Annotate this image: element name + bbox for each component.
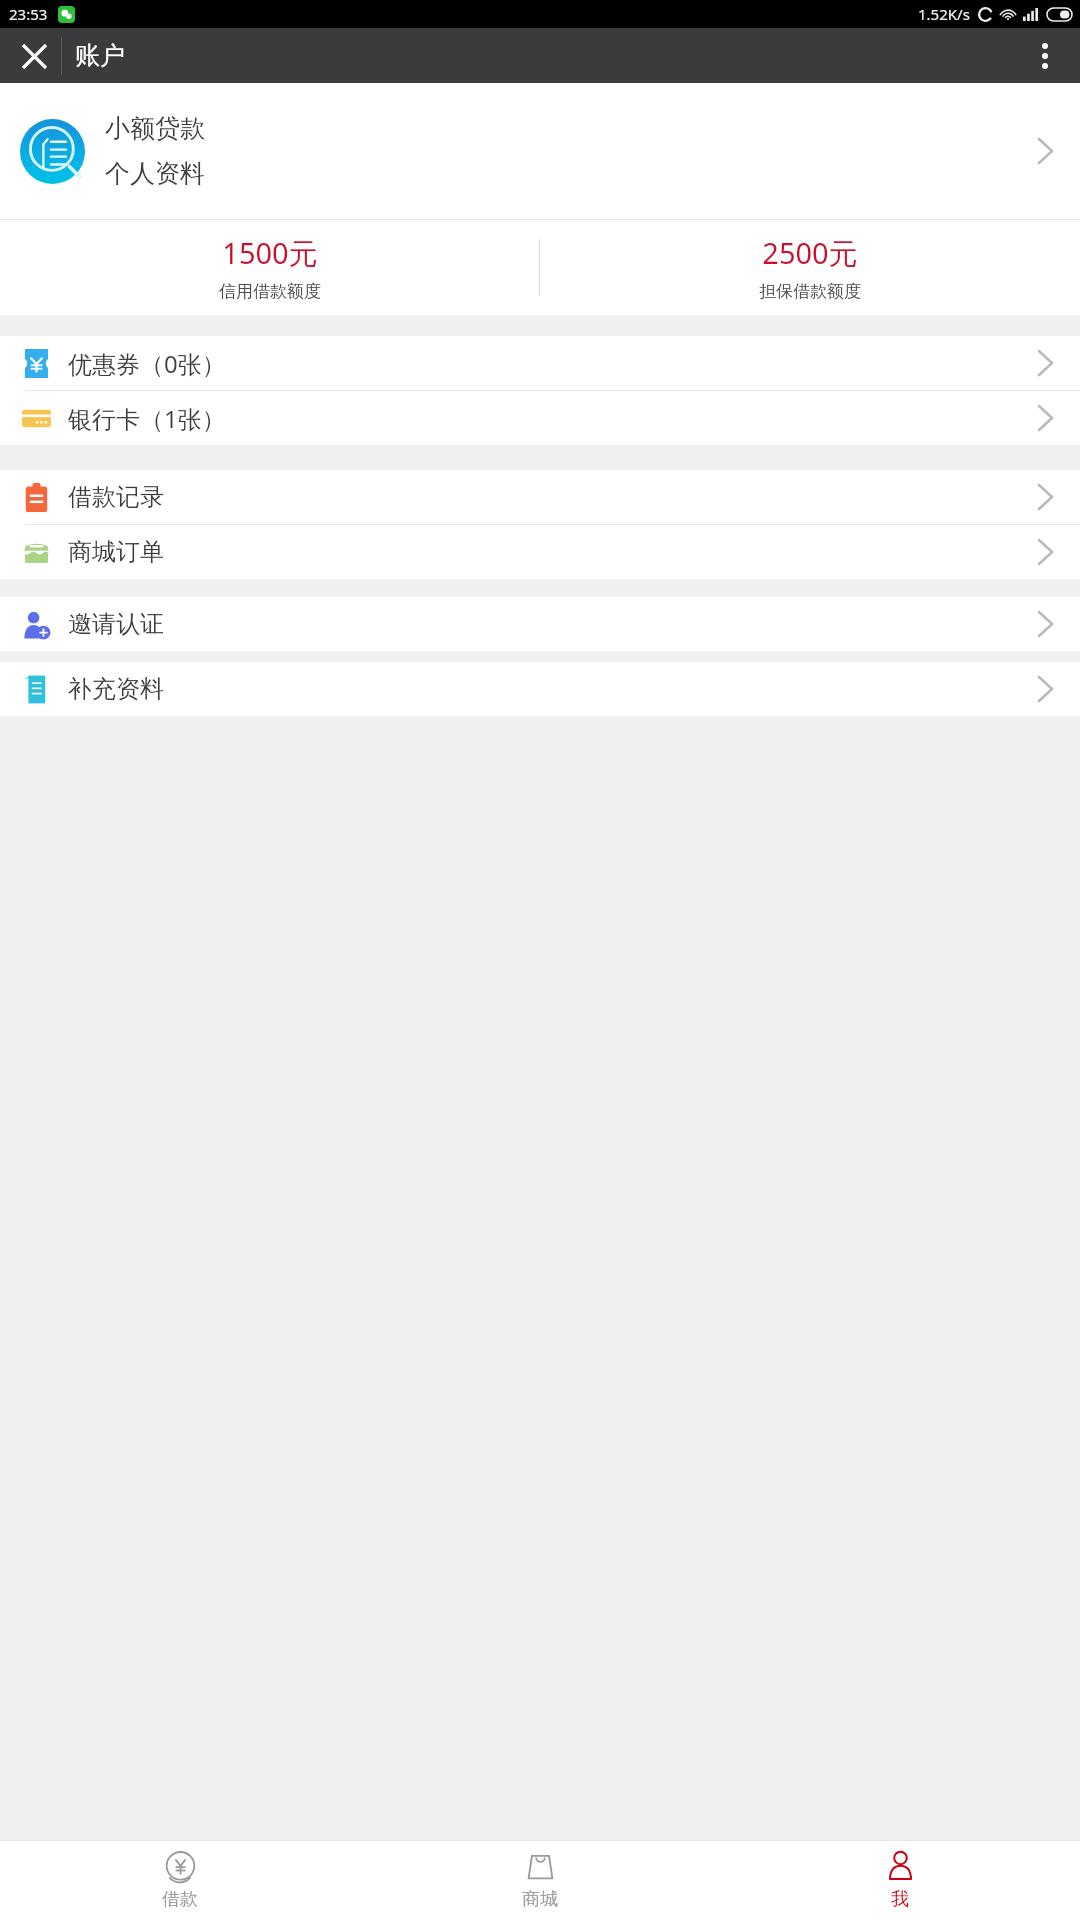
button[interactable]: 我 — [720, 1840, 1080, 1920]
staticText: 信用借款额度 — [219, 281, 321, 302]
staticText: 23:53 — [9, 4, 48, 24]
button[interactable]: 补充资料 — [0, 662, 1080, 716]
staticText: 小额贷款 — [105, 113, 205, 144]
staticText: 借款 — [162, 1888, 198, 1911]
button[interactable]: 2500元 — [540, 220, 1080, 315]
staticText: 借款记录 — [68, 482, 164, 512]
staticText: 账户 — [75, 40, 125, 71]
button[interactable]: 商城 — [360, 1840, 720, 1920]
button[interactable]: 借款 — [0, 1840, 360, 1920]
staticText: 商城订单 — [68, 537, 164, 567]
staticText: 1500元 — [222, 233, 318, 273]
staticText: 2500元 — [762, 233, 858, 273]
staticText: 个人资料 — [105, 158, 205, 189]
staticText: 优惠券（0张） — [68, 347, 226, 380]
staticText: 补充资料 — [68, 674, 164, 704]
staticText: 1.52K/s — [918, 4, 970, 24]
staticText: 我 — [891, 1888, 909, 1911]
staticText: 邀请认证 — [68, 609, 164, 639]
button[interactable]: 借款记录 — [0, 470, 1080, 524]
button[interactable]: More options — [1020, 31, 1070, 81]
button[interactable]: 邀请认证 — [0, 597, 1080, 651]
staticText: 担保借款额度 — [759, 281, 861, 302]
staticText: 商城 — [522, 1888, 558, 1911]
button[interactable]: 商城订单 — [0, 525, 1080, 579]
button[interactable]: 优惠券（0张） — [0, 336, 1080, 390]
button[interactable]: 小额贷款 — [0, 83, 1080, 219]
button[interactable]: 1500元 — [0, 220, 539, 315]
staticText: 银行卡（1张） — [68, 402, 226, 435]
button[interactable]: Close — [8, 30, 60, 82]
button[interactable]: 银行卡（1张） — [0, 391, 1080, 445]
